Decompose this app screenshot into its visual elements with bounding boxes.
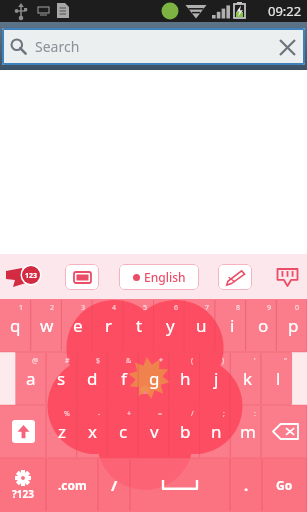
- staticText: 2: [50, 303, 55, 313]
- staticText: English: [144, 269, 186, 285]
- staticText: w: [40, 314, 54, 337]
- staticText: 4: [112, 303, 117, 313]
- staticText: j: [214, 367, 219, 390]
- staticText: /: [111, 475, 118, 495]
- staticText: .: [244, 475, 249, 495]
- button[interactable]: 5: [124, 299, 155, 352]
- staticText: u: [196, 314, 207, 337]
- staticText: .com: [58, 477, 87, 493]
- staticText: ": [284, 356, 287, 366]
- staticText: (: [191, 356, 194, 366]
- staticText: Go: [276, 477, 293, 493]
- staticText: 7: [205, 303, 210, 313]
- button[interactable]: 6: [155, 299, 186, 352]
- staticText: 3: [81, 303, 86, 313]
- button[interactable]: (: [170, 352, 201, 405]
- staticText: *: [159, 356, 163, 366]
- button[interactable]: 7: [186, 299, 217, 352]
- staticText: 1: [19, 303, 24, 313]
- button[interactable]: 3: [62, 299, 93, 352]
- button[interactable]: @: [15, 352, 46, 405]
- staticText: i: [230, 314, 235, 337]
- staticText: +: [127, 409, 132, 419]
- button[interactable]: .com: [46, 458, 98, 512]
- staticText: t: [136, 314, 143, 337]
- button[interactable]: ;: [201, 405, 232, 458]
- staticText: 5: [143, 303, 148, 313]
- button[interactable]: Emoji: [4, 263, 46, 291]
- staticText: m: [240, 420, 256, 443]
- staticText: &: [126, 356, 132, 366]
- button[interactable]: *: [139, 352, 170, 405]
- staticText: 9: [267, 303, 272, 313]
- staticText: 123: [25, 271, 38, 281]
- staticText: c: [119, 420, 128, 443]
- staticText: y: [166, 314, 175, 337]
- button[interactable]: /: [98, 458, 130, 512]
- staticText: k: [243, 367, 253, 390]
- button[interactable]: /: [170, 405, 201, 458]
- staticText: ?123: [12, 487, 34, 501]
- button[interactable]: $: [77, 352, 108, 405]
- button[interactable]: Symbols and settings: [0, 458, 46, 512]
- button[interactable]: 1: [0, 299, 31, 352]
- staticText: v: [150, 420, 159, 443]
- staticText: h: [180, 367, 191, 390]
- staticText: r: [105, 314, 113, 337]
- button[interactable]: %: [46, 405, 77, 458]
- button[interactable]: Backspace: [263, 405, 307, 458]
- button[interactable]: ): [201, 352, 232, 405]
- staticText: d: [87, 367, 98, 390]
- staticText: 09:22: [268, 2, 302, 20]
- staticText: :: [254, 409, 256, 419]
- staticText: a: [26, 367, 36, 390]
- staticText: p: [288, 314, 299, 337]
- button[interactable]: Search: [2, 28, 305, 65]
- button[interactable]: Handwriting: [218, 264, 252, 290]
- staticText: e: [73, 314, 83, 337]
- staticText: x: [88, 420, 97, 443]
- staticText: o: [258, 314, 269, 337]
- button[interactable]: 4: [93, 299, 124, 352]
- button[interactable]: English: [119, 264, 199, 290]
- staticText: b: [180, 420, 191, 443]
- button[interactable]: =: [139, 405, 170, 458]
- button[interactable]: Go: [262, 458, 307, 512]
- staticText: 8: [236, 303, 241, 313]
- button[interactable]: ': [232, 352, 263, 405]
- staticText: f: [121, 367, 127, 390]
- button[interactable]: Shift: [0, 405, 46, 458]
- button[interactable]: +: [108, 405, 139, 458]
- staticText: ): [222, 356, 225, 366]
- button[interactable]: &: [108, 352, 139, 405]
- staticText: -: [98, 409, 101, 419]
- button[interactable]: Hide keyboard: [271, 263, 303, 291]
- button[interactable]: :: [232, 405, 263, 458]
- button[interactable]: #: [46, 352, 77, 405]
- staticText: $: [96, 356, 101, 366]
- staticText: z: [58, 420, 66, 443]
- staticText: l: [276, 367, 281, 390]
- staticText: 0: [295, 303, 300, 313]
- button[interactable]: Space: [130, 458, 230, 512]
- button[interactable]: 2: [31, 299, 62, 352]
- staticText: /: [191, 409, 194, 419]
- staticText: @: [32, 356, 39, 366]
- staticText: n: [211, 420, 222, 443]
- button[interactable]: 0: [279, 299, 307, 352]
- button[interactable]: ": [263, 352, 294, 405]
- button[interactable]: 8: [217, 299, 248, 352]
- button[interactable]: Theme: [65, 264, 99, 290]
- staticText: #: [65, 356, 70, 366]
- button[interactable]: Clear search: [273, 33, 301, 61]
- staticText: %: [64, 409, 70, 419]
- staticText: g: [149, 367, 160, 390]
- staticText: q: [10, 314, 21, 337]
- staticText: 6: [174, 303, 179, 313]
- button[interactable]: 9: [248, 299, 279, 352]
- staticText: Search: [35, 37, 80, 56]
- staticText: ;: [223, 409, 225, 419]
- button[interactable]: .: [230, 458, 262, 512]
- staticText: ': [254, 356, 256, 366]
- button[interactable]: -: [77, 405, 108, 458]
